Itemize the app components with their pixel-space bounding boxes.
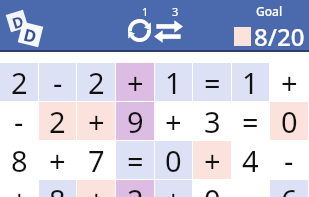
staticText: 9 [127, 102, 144, 140]
staticText: 0 [204, 180, 221, 197]
button[interactable]: 8 [0, 141, 38, 179]
button[interactable]: + [39, 141, 76, 179]
staticText: 6 [281, 180, 298, 197]
button[interactable]: + [155, 180, 192, 197]
staticText: 8 [49, 180, 66, 197]
button[interactable]: + [270, 63, 308, 101]
button[interactable]: App logo [4, 5, 46, 47]
staticText: 7 [88, 141, 105, 179]
staticText: + [165, 102, 182, 140]
staticText: 2 [49, 102, 66, 140]
staticText: 2 [88, 63, 105, 101]
button[interactable]: 9 [116, 102, 154, 140]
button[interactable]: 2 [77, 63, 115, 101]
button[interactable]: + [77, 102, 115, 140]
staticText: 4 [242, 141, 259, 179]
button[interactable]: 4 [232, 141, 269, 179]
button[interactable]: 1 [232, 63, 269, 101]
button[interactable]: 2 [39, 102, 76, 140]
button[interactable]: + [116, 63, 154, 101]
button[interactable]: - [0, 102, 38, 140]
staticText: D [22, 23, 39, 46]
staticText: 8/20 [254, 20, 305, 53]
staticText: 2 [127, 180, 144, 197]
button[interactable]: 2 [116, 180, 154, 197]
button[interactable]: 2 [0, 63, 38, 101]
staticText: + [281, 63, 298, 101]
button[interactable]: - [270, 141, 308, 179]
staticText: + [49, 141, 66, 179]
staticText: 0 [165, 141, 182, 179]
button[interactable]: 0 [155, 141, 192, 179]
button[interactable]: 0 [270, 102, 308, 140]
staticText: + [165, 180, 182, 197]
button[interactable]: + [0, 180, 38, 197]
button[interactable]: 6 [270, 180, 308, 197]
staticText: 1 [142, 4, 149, 19]
staticText: D [10, 11, 25, 31]
staticText: + [127, 63, 144, 101]
staticText: - [53, 63, 63, 101]
staticText: 3 [172, 4, 179, 19]
staticText: 1 [242, 63, 259, 101]
staticText: + [88, 180, 105, 197]
staticText: Goal [256, 3, 283, 19]
button[interactable]: 3 [193, 102, 231, 140]
staticText: = [127, 141, 144, 179]
staticText: 0 [281, 102, 298, 140]
button[interactable]: Refresh, 1 pending [125, 6, 155, 44]
staticText: + [88, 102, 105, 140]
staticText: + [204, 141, 221, 179]
button[interactable]: 0 [193, 180, 231, 197]
staticText: - [284, 141, 294, 179]
button[interactable]: + [155, 102, 192, 140]
staticText: 2 [11, 63, 28, 101]
button[interactable]: = [193, 63, 231, 101]
staticText: 8 [11, 141, 28, 179]
button[interactable]: + [193, 141, 231, 179]
button[interactable]: 7 [77, 141, 115, 179]
button[interactable]: - [39, 63, 76, 101]
staticText: = [204, 63, 221, 101]
button[interactable]: 1 [155, 63, 192, 101]
staticText: 1 [165, 63, 182, 101]
button[interactable]: + [77, 180, 115, 197]
button[interactable]: = [232, 102, 269, 140]
staticText: = [242, 102, 259, 140]
button[interactable]: = [116, 141, 154, 179]
button[interactable]: Swap, 3 pending [154, 6, 186, 44]
staticText: + [11, 180, 28, 197]
button[interactable]: Goal [234, 3, 305, 53]
staticText: - [14, 102, 24, 140]
button[interactable]: 8 [39, 180, 76, 197]
staticText: 3 [204, 102, 221, 140]
